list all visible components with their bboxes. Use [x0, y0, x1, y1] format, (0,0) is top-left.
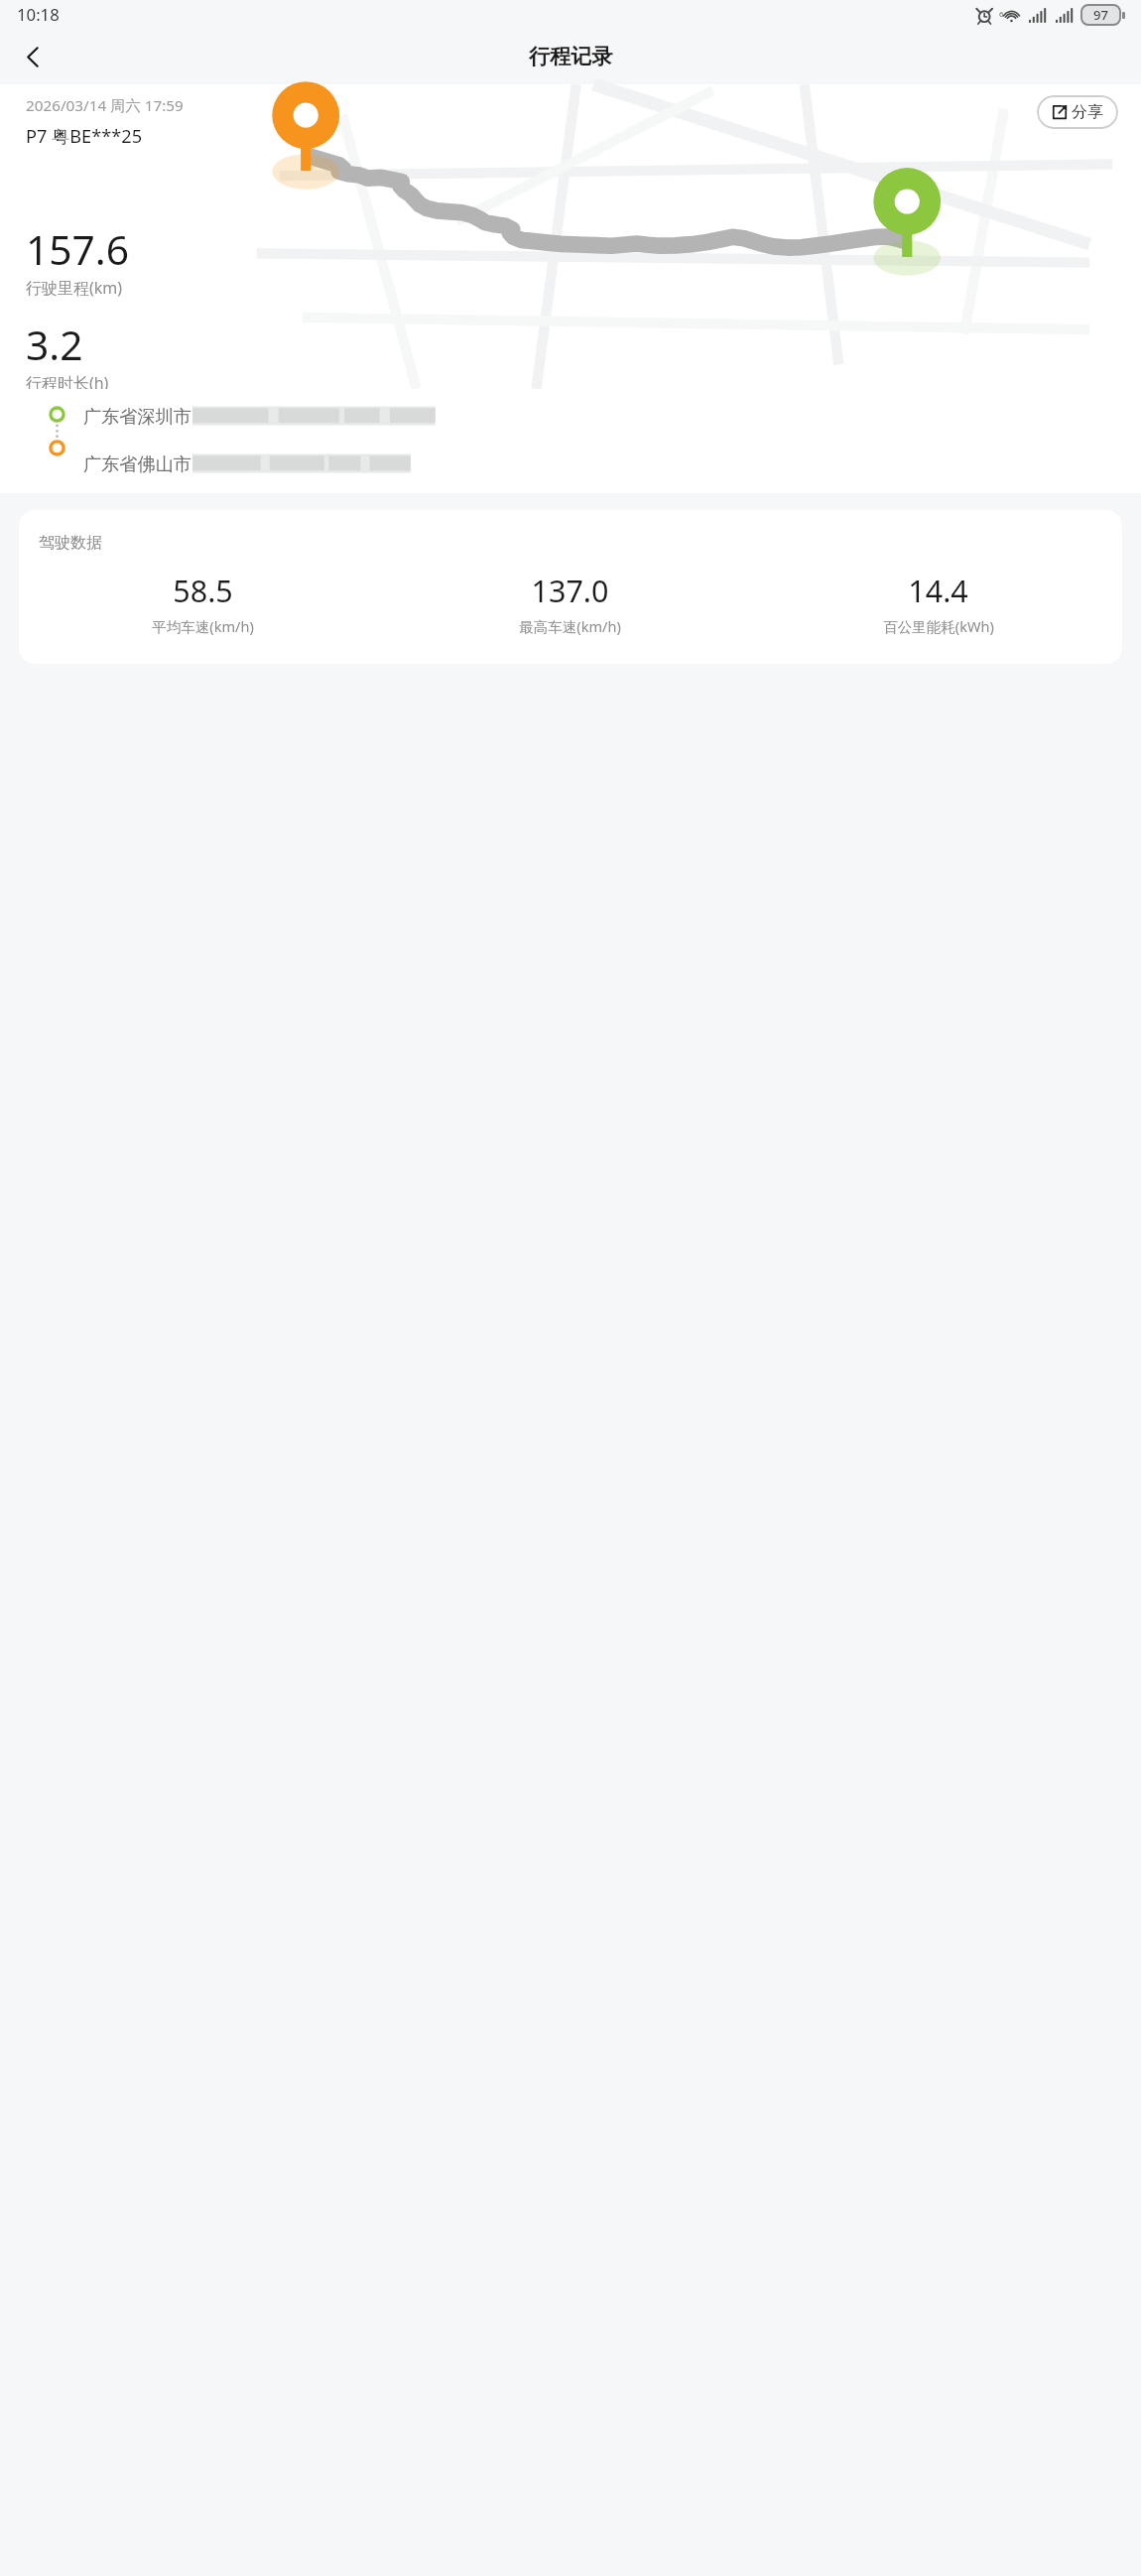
- staticText: 行驶里程(km): [26, 277, 123, 299]
- staticText: 137.0: [531, 570, 609, 611]
- button[interactable]: 分享: [1037, 95, 1118, 129]
- staticText: 6: [999, 8, 1004, 19]
- staticText: 分享: [1072, 102, 1103, 122]
- staticText: 最高车速(km/h): [519, 616, 621, 636]
- staticText: 百公里能耗(kWh): [883, 616, 994, 636]
- staticText: 2026/03/14 周六 17:59: [26, 95, 184, 116]
- staticText: 行程时长(h): [26, 372, 109, 389]
- staticText: 157.6: [26, 221, 130, 276]
- staticText: 广东省佛山市: [83, 452, 192, 475]
- button[interactable]: 广东省佛山市: [83, 451, 420, 475]
- staticText: 平均车速(km/h): [152, 616, 254, 636]
- button[interactable]: 广东省深圳市: [83, 404, 445, 428]
- button[interactable]: 驾驶数据: [19, 510, 1122, 664]
- staticText: P7 粤BE***25: [26, 124, 143, 149]
- staticText: 驾驶数据: [39, 533, 102, 553]
- staticText: 97: [1093, 6, 1108, 24]
- staticText: 10:18: [17, 3, 60, 26]
- staticText: 广东省深圳市: [83, 405, 192, 428]
- staticText: 3.2: [26, 317, 83, 371]
- button[interactable]: 返回: [8, 32, 59, 82]
- staticText: 58.5: [173, 570, 233, 611]
- staticText: 行程记录: [529, 44, 613, 70]
- staticText: 14.4: [908, 570, 968, 611]
